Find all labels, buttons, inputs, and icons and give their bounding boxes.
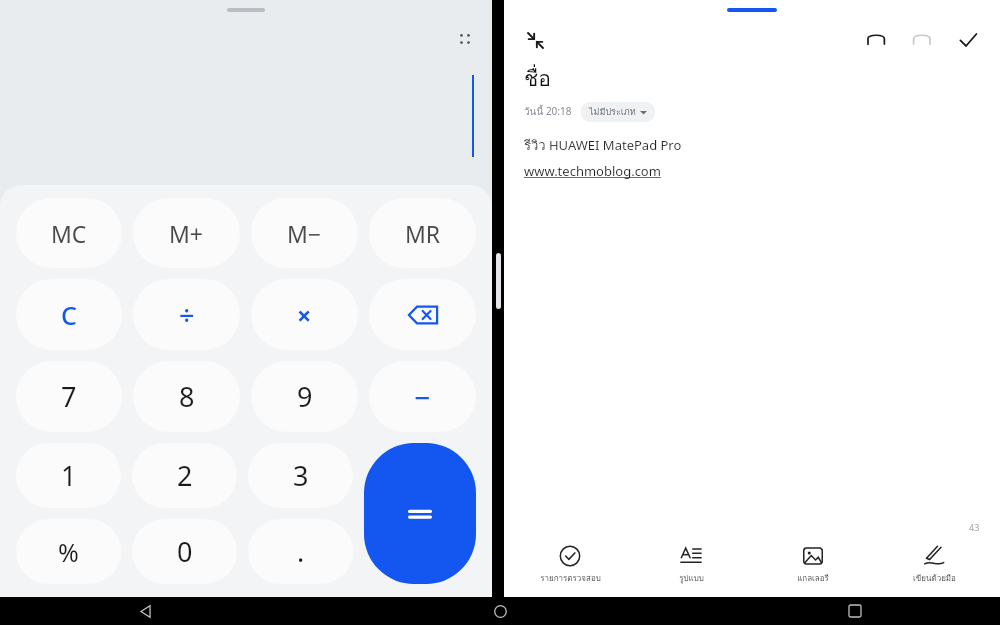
button[interactable]: แกลเลอรี <box>758 543 868 587</box>
button[interactable]: M+ <box>133 198 240 268</box>
staticText: 0 <box>177 533 193 570</box>
button[interactable]: ไม่มีประเภท <box>581 102 655 122</box>
staticText: แกลเลอรี <box>797 572 829 585</box>
button[interactable]: รูปแบบ <box>636 543 746 587</box>
button[interactable]: 2 <box>132 443 237 508</box>
staticText: × <box>297 298 312 332</box>
staticText: วันนี้ 20:18 <box>524 104 572 120</box>
button[interactable]: Redo <box>906 24 938 56</box>
button[interactable]: MR <box>369 198 476 268</box>
button[interactable]: Window handle <box>727 8 777 12</box>
staticText: ชื่อ <box>524 62 551 95</box>
button[interactable]: Recents <box>840 597 870 625</box>
staticText: รีวิว HUAWEI MatePad Pro <box>524 135 682 156</box>
staticText: MR <box>405 218 441 249</box>
staticText: MC <box>51 218 87 249</box>
staticText: M− <box>287 218 322 249</box>
button[interactable]: 0 <box>132 519 237 584</box>
button[interactable]: รายการตรวจสอบ <box>515 543 625 587</box>
button[interactable]: Backspace <box>369 279 476 350</box>
button[interactable]: 1 <box>16 443 121 508</box>
button[interactable]: ÷ <box>133 279 240 350</box>
button[interactable]: M− <box>251 198 358 268</box>
staticText: ÷ <box>179 296 195 333</box>
button[interactable]: 3 <box>248 443 353 508</box>
button[interactable]: Undo <box>860 24 892 56</box>
staticText: C <box>61 298 77 332</box>
staticText: . <box>297 533 305 570</box>
staticText: M+ <box>169 218 204 249</box>
staticText: 1 <box>61 457 77 494</box>
button[interactable]: MC <box>16 198 122 268</box>
staticText: รายการตรวจสอบ <box>540 572 601 585</box>
button[interactable]: 7 <box>16 361 122 432</box>
button[interactable]: − <box>369 361 476 432</box>
button[interactable]: Done <box>952 24 984 56</box>
button[interactable]: % <box>16 519 121 584</box>
staticText: 7 <box>61 378 77 415</box>
button[interactable]: Home <box>485 597 515 625</box>
staticText: รูปแบบ <box>679 572 704 585</box>
staticText: 3 <box>293 457 309 494</box>
staticText: เขียนด้วยมือ <box>913 572 956 585</box>
button[interactable]: C <box>16 279 122 350</box>
button[interactable]: . <box>248 519 353 584</box>
button[interactable]: Equals <box>364 443 476 584</box>
button[interactable]: 8 <box>133 361 240 432</box>
button[interactable]: Collapse <box>520 25 550 55</box>
button[interactable]: เขียนด้วยมือ <box>879 543 989 587</box>
staticText: ไม่มีประเภท <box>589 105 636 119</box>
button[interactable]: × <box>251 279 358 350</box>
button[interactable]: Resize split <box>496 253 501 309</box>
button[interactable]: Drag handle <box>227 8 265 12</box>
staticText: www.techmoblog.com <box>524 162 661 180</box>
staticText: % <box>58 535 79 569</box>
button[interactable]: More options <box>452 26 478 52</box>
staticText: 8 <box>179 378 195 415</box>
staticText: 2 <box>177 457 193 494</box>
staticText: − <box>414 378 431 416</box>
button[interactable]: 9 <box>251 361 358 432</box>
button[interactable]: Back <box>130 597 160 625</box>
staticText: 43 <box>969 521 980 533</box>
staticText: 9 <box>297 378 313 415</box>
